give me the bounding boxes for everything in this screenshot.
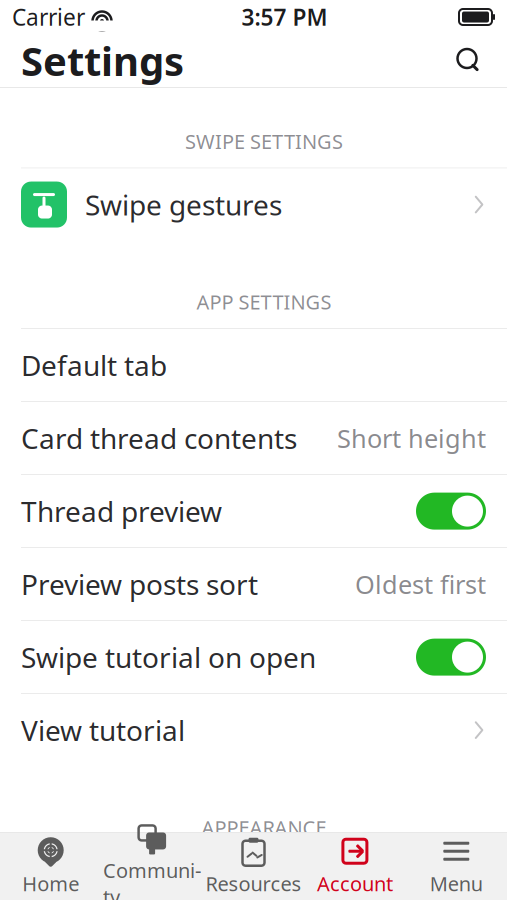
staticText: Dark mode [21,872,167,900]
staticText: Short height [337,421,486,455]
staticText: Carrier [12,2,85,32]
staticText: SWIPE SETTINGS [185,128,343,155]
button[interactable]: Swipe gestures [0,169,507,241]
staticText: Swipe tutorial on open [21,638,316,676]
staticText: APPEARANCE [201,814,326,841]
button[interactable]: Community [101,833,203,900]
button[interactable]: Default tab [0,329,507,401]
button[interactable]: Menu [406,833,507,900]
button[interactable]: View tutorial [0,694,507,766]
staticText: Menu [430,870,483,897]
staticText: Swipe gestures [85,186,282,223]
button[interactable]: Dark mode [0,855,507,900]
staticText: Resources [205,870,301,897]
staticText: 3:57 PM [241,2,327,32]
staticText: Oldest first [355,567,486,601]
staticText: APP SETTINGS [196,289,331,315]
staticText: View tutorial [21,711,185,749]
button[interactable]: Thread preview [0,475,507,547]
button[interactable]: Preview posts sort [0,548,507,620]
staticText: Home [22,870,79,897]
button[interactable]: Search [447,38,491,82]
button[interactable]: Home [0,833,101,900]
staticText: Card thread contents [21,419,297,457]
staticText: Account [317,870,393,897]
button[interactable]: Card thread contents [0,402,507,474]
staticText: Settings [21,34,184,87]
staticText: Community [103,857,201,900]
staticText: Default tab [21,346,167,384]
staticText: Thread preview [21,492,222,530]
staticText: Preview posts sort [21,565,258,603]
button[interactable]: Account [304,833,406,900]
button[interactable]: Swipe tutorial on open [0,621,507,693]
button[interactable]: Resources [203,833,304,900]
